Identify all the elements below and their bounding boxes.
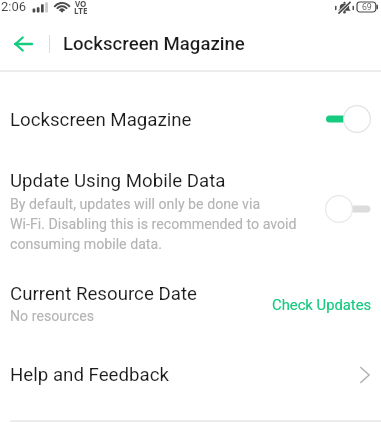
- button[interactable]: Switch off: [325, 194, 371, 224]
- staticText: No resources: [10, 308, 95, 325]
- staticText: 69: [362, 1, 372, 13]
- button[interactable]: Switch on: [325, 104, 371, 134]
- staticText: Current Resource Date: [10, 283, 197, 305]
- button[interactable]: Help and Feedback: [0, 350, 381, 400]
- button[interactable]: Back: [0, 22, 46, 66]
- staticText: 2:06: [1, 0, 27, 14]
- staticText: Lockscreen Magazine: [63, 33, 245, 55]
- staticText: LTE: [74, 5, 88, 16]
- staticText: By default, updates will only be done vi…: [10, 196, 297, 252]
- staticText: Help and Feedback: [10, 364, 169, 386]
- staticText: VO: [75, 0, 87, 9]
- staticText: Update Using Mobile Data: [10, 170, 226, 192]
- button[interactable]: Lockscreen Magazine: [0, 96, 381, 144]
- button[interactable]: Check Updates: [267, 290, 377, 319]
- staticText: Check Updates: [272, 296, 372, 313]
- staticText: Lockscreen Magazine: [10, 109, 192, 131]
- button[interactable]: Update Using Mobile Data: [0, 170, 381, 252]
